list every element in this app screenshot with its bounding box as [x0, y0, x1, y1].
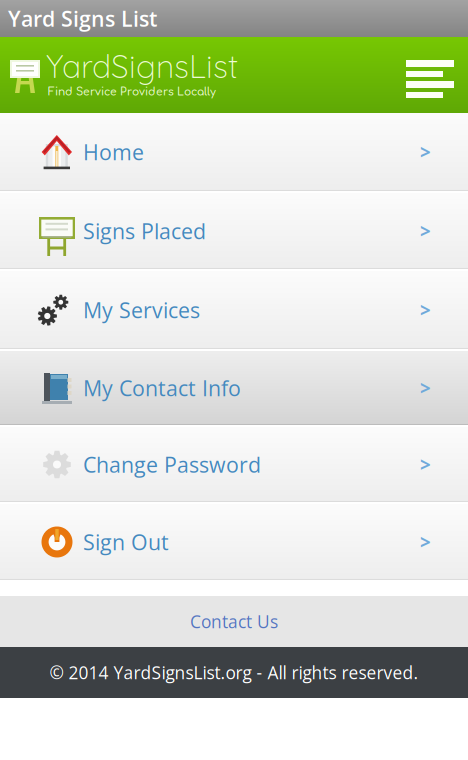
staticText: © 2014 YardSignsList.org - All rights re…	[49, 661, 418, 684]
staticText: Contact Us	[190, 610, 278, 633]
staticText: >	[420, 218, 431, 244]
staticText: Signs Placed	[83, 216, 206, 246]
button[interactable]: Sign Out	[0, 504, 468, 580]
button[interactable]: Home	[0, 113, 468, 191]
staticText: >	[420, 529, 431, 555]
staticText: Sign Out	[83, 527, 169, 557]
staticText: Yard Signs List	[8, 4, 157, 33]
button[interactable]: Signs Placed	[0, 193, 468, 269]
button[interactable]: Menu	[386, 52, 468, 98]
staticText: >	[420, 139, 431, 165]
staticText: My Services	[83, 295, 200, 325]
button[interactable]: My Services	[0, 271, 468, 349]
staticText: Home	[83, 137, 144, 167]
staticText: My Contact Info	[83, 373, 241, 403]
staticText: >	[420, 452, 431, 477]
button[interactable]: Contact Us	[0, 596, 468, 647]
staticText: Change Password	[83, 450, 261, 479]
staticText: >	[420, 375, 431, 401]
staticText: Find Service Providers Locally	[48, 86, 216, 98]
staticText: >	[420, 297, 431, 323]
button[interactable]: My Contact Info	[0, 351, 468, 425]
button[interactable]: Change Password	[0, 427, 468, 502]
staticText: YardSignsList	[46, 46, 238, 86]
